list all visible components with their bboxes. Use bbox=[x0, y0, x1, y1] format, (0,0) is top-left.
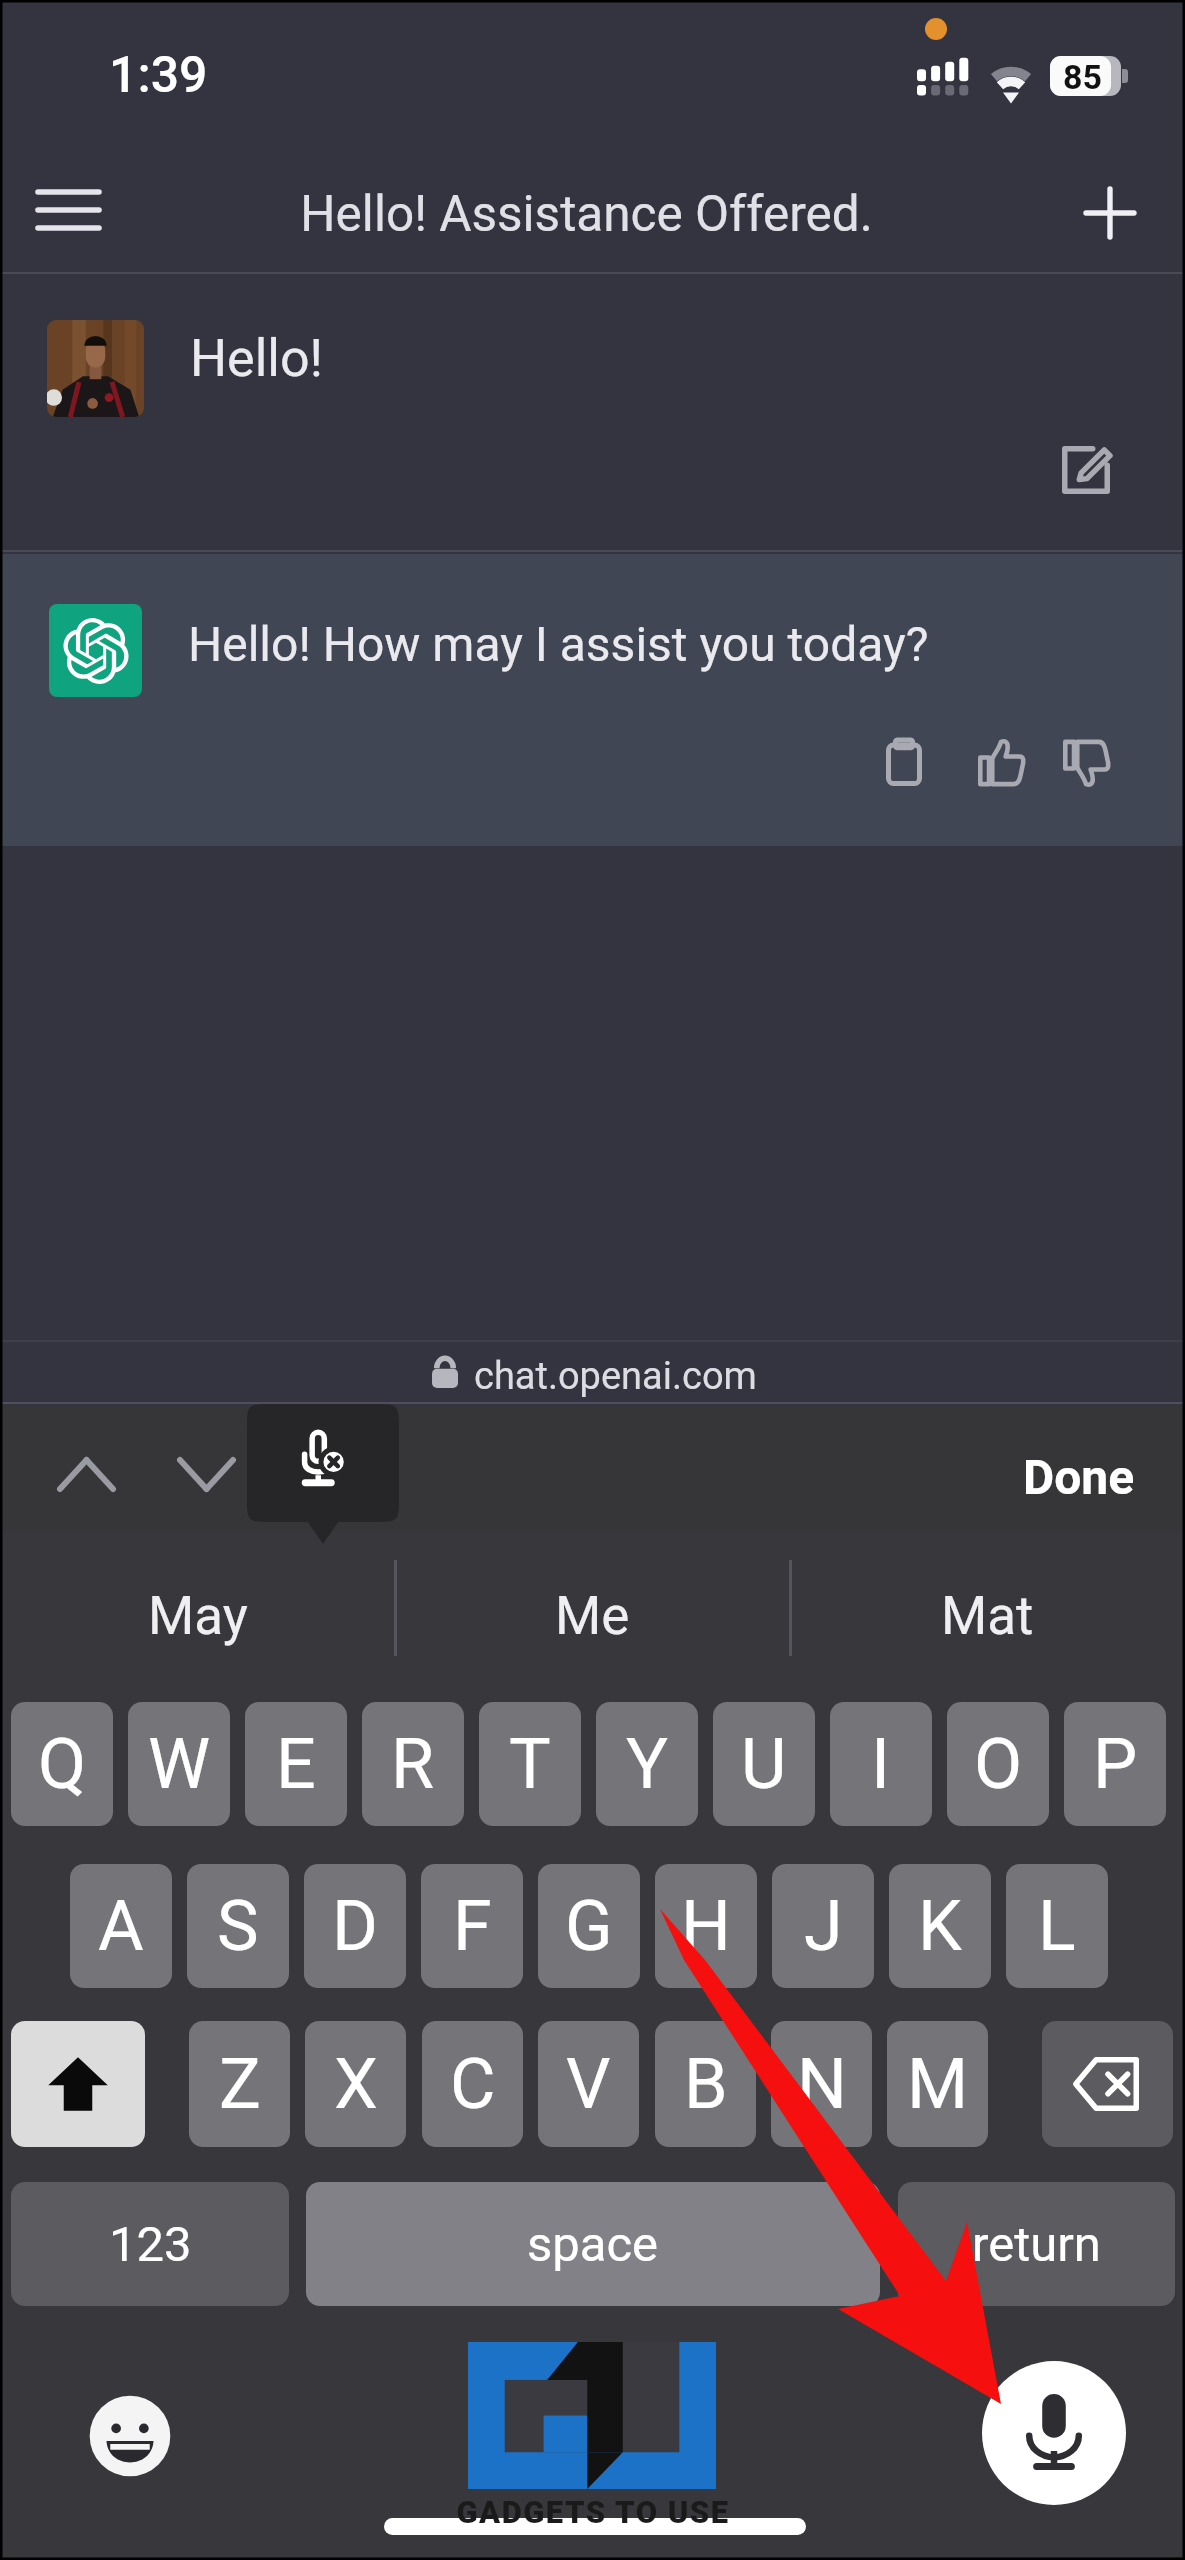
staticText: GADGETS TO USE bbox=[438, 2494, 748, 2530]
staticText: V bbox=[566, 2043, 611, 2125]
staticText: K bbox=[918, 1885, 962, 1967]
button[interactable]: New chat bbox=[1062, 170, 1158, 256]
staticText: O bbox=[974, 1723, 1023, 1805]
button[interactable]: Backspace bbox=[1042, 2021, 1173, 2147]
button[interactable]: V bbox=[538, 2021, 639, 2147]
button[interactable]: H bbox=[655, 1864, 757, 1988]
button[interactable]: U bbox=[713, 1702, 815, 1826]
button[interactable]: S bbox=[187, 1864, 289, 1988]
staticText: Mat bbox=[941, 1585, 1034, 1647]
staticText: P bbox=[1093, 1723, 1138, 1805]
staticText: Done bbox=[1023, 1449, 1135, 1505]
staticText: A bbox=[98, 1885, 144, 1967]
button[interactable]: Mat bbox=[790, 1536, 1185, 1695]
button[interactable]: Menu bbox=[18, 167, 118, 253]
staticText: E bbox=[276, 1723, 316, 1805]
button[interactable]: Shift bbox=[11, 2021, 145, 2147]
staticText: D bbox=[332, 1885, 378, 1967]
button[interactable]: Edit bbox=[1040, 424, 1132, 516]
button[interactable]: M bbox=[887, 2021, 988, 2147]
button[interactable]: B bbox=[655, 2021, 756, 2147]
button[interactable]: G bbox=[538, 1864, 640, 1988]
button[interactable]: Next field bbox=[165, 1433, 247, 1515]
staticText: R bbox=[391, 1723, 435, 1805]
button[interactable]: Copy bbox=[862, 721, 946, 805]
staticText: T bbox=[509, 1723, 551, 1805]
button[interactable]: X bbox=[305, 2021, 406, 2147]
button[interactable]: K bbox=[889, 1864, 991, 1988]
button[interactable]: J bbox=[772, 1864, 874, 1988]
staticText: I bbox=[871, 1723, 891, 1805]
button[interactable]: Bad response bbox=[1044, 721, 1128, 805]
staticText: May bbox=[148, 1585, 248, 1647]
staticText: return bbox=[972, 2216, 1101, 2273]
button[interactable]: C bbox=[422, 2021, 523, 2147]
staticText: chat.openai.com bbox=[474, 1354, 757, 1399]
staticText: U bbox=[741, 1723, 787, 1805]
button[interactable]: W bbox=[128, 1702, 230, 1826]
staticText: Q bbox=[38, 1723, 87, 1805]
staticText: L bbox=[1038, 1885, 1076, 1967]
staticText: 85 bbox=[1063, 57, 1103, 97]
staticText: space bbox=[527, 2216, 659, 2273]
button[interactable]: L bbox=[1006, 1864, 1108, 1988]
button[interactable]: space bbox=[306, 2182, 880, 2306]
staticText: M bbox=[907, 2043, 969, 2125]
button[interactable]: Good response bbox=[959, 721, 1043, 805]
staticText: 123 bbox=[109, 2216, 192, 2273]
button[interactable]: Z bbox=[189, 2021, 290, 2147]
button[interactable]: N bbox=[771, 2021, 872, 2147]
staticText: Hello! Assistance Offered. bbox=[0, 185, 1179, 243]
staticText: Me bbox=[555, 1585, 630, 1647]
button[interactable]: A bbox=[70, 1864, 172, 1988]
staticText: B bbox=[684, 2043, 728, 2125]
button[interactable]: D bbox=[304, 1864, 406, 1988]
button[interactable]: Y bbox=[596, 1702, 698, 1826]
staticText: Hello! bbox=[190, 328, 324, 389]
button[interactable]: R bbox=[362, 1702, 464, 1826]
button[interactable]: E bbox=[245, 1702, 347, 1826]
button[interactable]: O bbox=[947, 1702, 1049, 1826]
button[interactable]: Done bbox=[1009, 1434, 1149, 1520]
button[interactable]: Q bbox=[11, 1702, 113, 1826]
button[interactable]: Previous field bbox=[45, 1433, 127, 1515]
staticText: Z bbox=[219, 2043, 261, 2125]
staticText: J bbox=[804, 1885, 843, 1967]
staticText: F bbox=[453, 1885, 492, 1967]
staticText: G bbox=[565, 1885, 613, 1967]
button[interactable]: Dictate bbox=[982, 2361, 1126, 2505]
button[interactable]: F bbox=[421, 1864, 523, 1988]
button[interactable]: Emoji keyboard bbox=[84, 2390, 176, 2482]
staticText: 1:39 bbox=[109, 46, 208, 105]
staticText: Y bbox=[626, 1723, 669, 1805]
staticText: H bbox=[681, 1885, 731, 1967]
button[interactable]: P bbox=[1064, 1702, 1166, 1826]
button[interactable]: T bbox=[479, 1702, 581, 1826]
staticText: W bbox=[148, 1723, 211, 1805]
button[interactable]: return bbox=[898, 2182, 1175, 2306]
button[interactable]: 123 bbox=[11, 2182, 289, 2306]
staticText: N bbox=[797, 2043, 847, 2125]
button[interactable]: May bbox=[0, 1536, 395, 1695]
button[interactable]: Me bbox=[395, 1536, 790, 1695]
staticText: C bbox=[450, 2043, 496, 2125]
staticText: S bbox=[217, 1885, 259, 1967]
button[interactable]: I bbox=[830, 1702, 932, 1826]
staticText: Hello! How may I assist you today? bbox=[188, 616, 929, 672]
staticText: X bbox=[334, 2043, 378, 2125]
